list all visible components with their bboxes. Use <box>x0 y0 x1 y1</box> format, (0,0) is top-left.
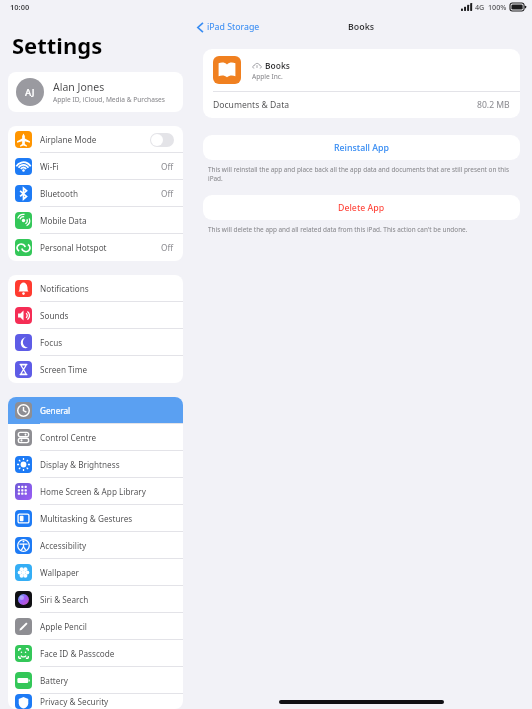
staticText: This will delete the app and all related… <box>208 225 468 234</box>
staticText: Personal Hotspot <box>40 242 161 253</box>
staticText: 10:00 <box>10 2 30 12</box>
staticText: Battery <box>40 675 174 686</box>
button[interactable]: Personal Hotspot <box>8 234 183 261</box>
staticText: Settings <box>12 30 103 60</box>
staticText: Airplane Mode <box>40 134 150 145</box>
button[interactable]: Documents & Data <box>203 92 520 118</box>
staticText: This will reinstall the app and place ba… <box>208 165 515 183</box>
button[interactable]: iPad Storage <box>197 21 260 33</box>
staticText: Alan Jones <box>53 80 105 94</box>
button[interactable]: Sounds <box>8 302 183 329</box>
staticText: Sounds <box>40 310 174 321</box>
staticText: 80.2 MB <box>477 99 510 111</box>
button[interactable]: Multitasking & Gestures <box>8 505 183 532</box>
button[interactable]: Display & Brightness <box>8 451 183 478</box>
staticText: Off <box>161 188 174 199</box>
button[interactable]: AJ <box>8 72 183 112</box>
button[interactable]: Siri & Search <box>8 586 183 613</box>
staticText: Multitasking & Gestures <box>40 513 174 524</box>
button[interactable]: Control Centre <box>8 424 183 451</box>
button[interactable]: Battery <box>8 667 183 694</box>
button[interactable]: Bluetooth <box>8 180 183 207</box>
staticText: Off <box>161 242 174 253</box>
staticText: Focus <box>40 337 174 348</box>
staticText: Wi-Fi <box>40 161 161 172</box>
button[interactable]: Apple Pencil <box>8 613 183 640</box>
staticText: Apple Inc. <box>252 72 283 81</box>
button[interactable]: Home Screen & App Library <box>8 478 183 505</box>
staticText: iPad Storage <box>207 21 260 33</box>
staticText: Siri & Search <box>40 594 174 605</box>
staticText: Screen Time <box>40 364 174 375</box>
staticText: Apple Pencil <box>40 621 174 632</box>
staticText: Accessibility <box>40 540 174 551</box>
button[interactable]: General <box>8 397 183 424</box>
button[interactable]: Wi-Fi <box>8 153 183 180</box>
staticText: Notifications <box>40 283 174 294</box>
button[interactable]: Delete App <box>203 195 520 220</box>
staticText: Documents & Data <box>213 99 477 111</box>
staticText: 4G <box>475 2 485 12</box>
staticText: General <box>40 405 174 416</box>
button[interactable]: Mobile Data <box>8 207 183 234</box>
staticText: Reinstall App <box>334 142 389 154</box>
button[interactable]: Books <box>203 49 520 91</box>
staticText: AJ <box>25 86 35 99</box>
staticText: Apple ID, iCloud, Media & Purchases <box>53 95 165 104</box>
staticText: Wallpaper <box>40 567 174 578</box>
staticText: Delete App <box>338 202 385 214</box>
staticText: Face ID & Passcode <box>40 648 174 659</box>
button[interactable]: Privacy & Security <box>8 694 183 709</box>
staticText: Privacy & Security <box>40 696 174 707</box>
staticText: Bluetooth <box>40 188 161 199</box>
button[interactable]: Screen Time <box>8 356 183 383</box>
staticText: Control Centre <box>40 432 174 443</box>
button[interactable]: Focus <box>8 329 183 356</box>
staticText: Mobile Data <box>40 215 174 226</box>
button[interactable]: Face ID & Passcode <box>8 640 183 667</box>
staticText: Home Screen & App Library <box>40 486 174 497</box>
button[interactable]: Airplane Mode toggle <box>150 133 174 147</box>
staticText: Display & Brightness <box>40 459 174 470</box>
button[interactable]: Airplane Mode <box>8 126 183 153</box>
staticText: Books <box>265 60 290 71</box>
button[interactable]: Accessibility <box>8 532 183 559</box>
staticText: Books <box>348 21 375 33</box>
staticText: 100% <box>488 2 507 12</box>
button[interactable]: Notifications <box>8 275 183 302</box>
button[interactable]: Reinstall App <box>203 135 520 160</box>
button[interactable]: Wallpaper <box>8 559 183 586</box>
staticText: Off <box>161 161 174 172</box>
